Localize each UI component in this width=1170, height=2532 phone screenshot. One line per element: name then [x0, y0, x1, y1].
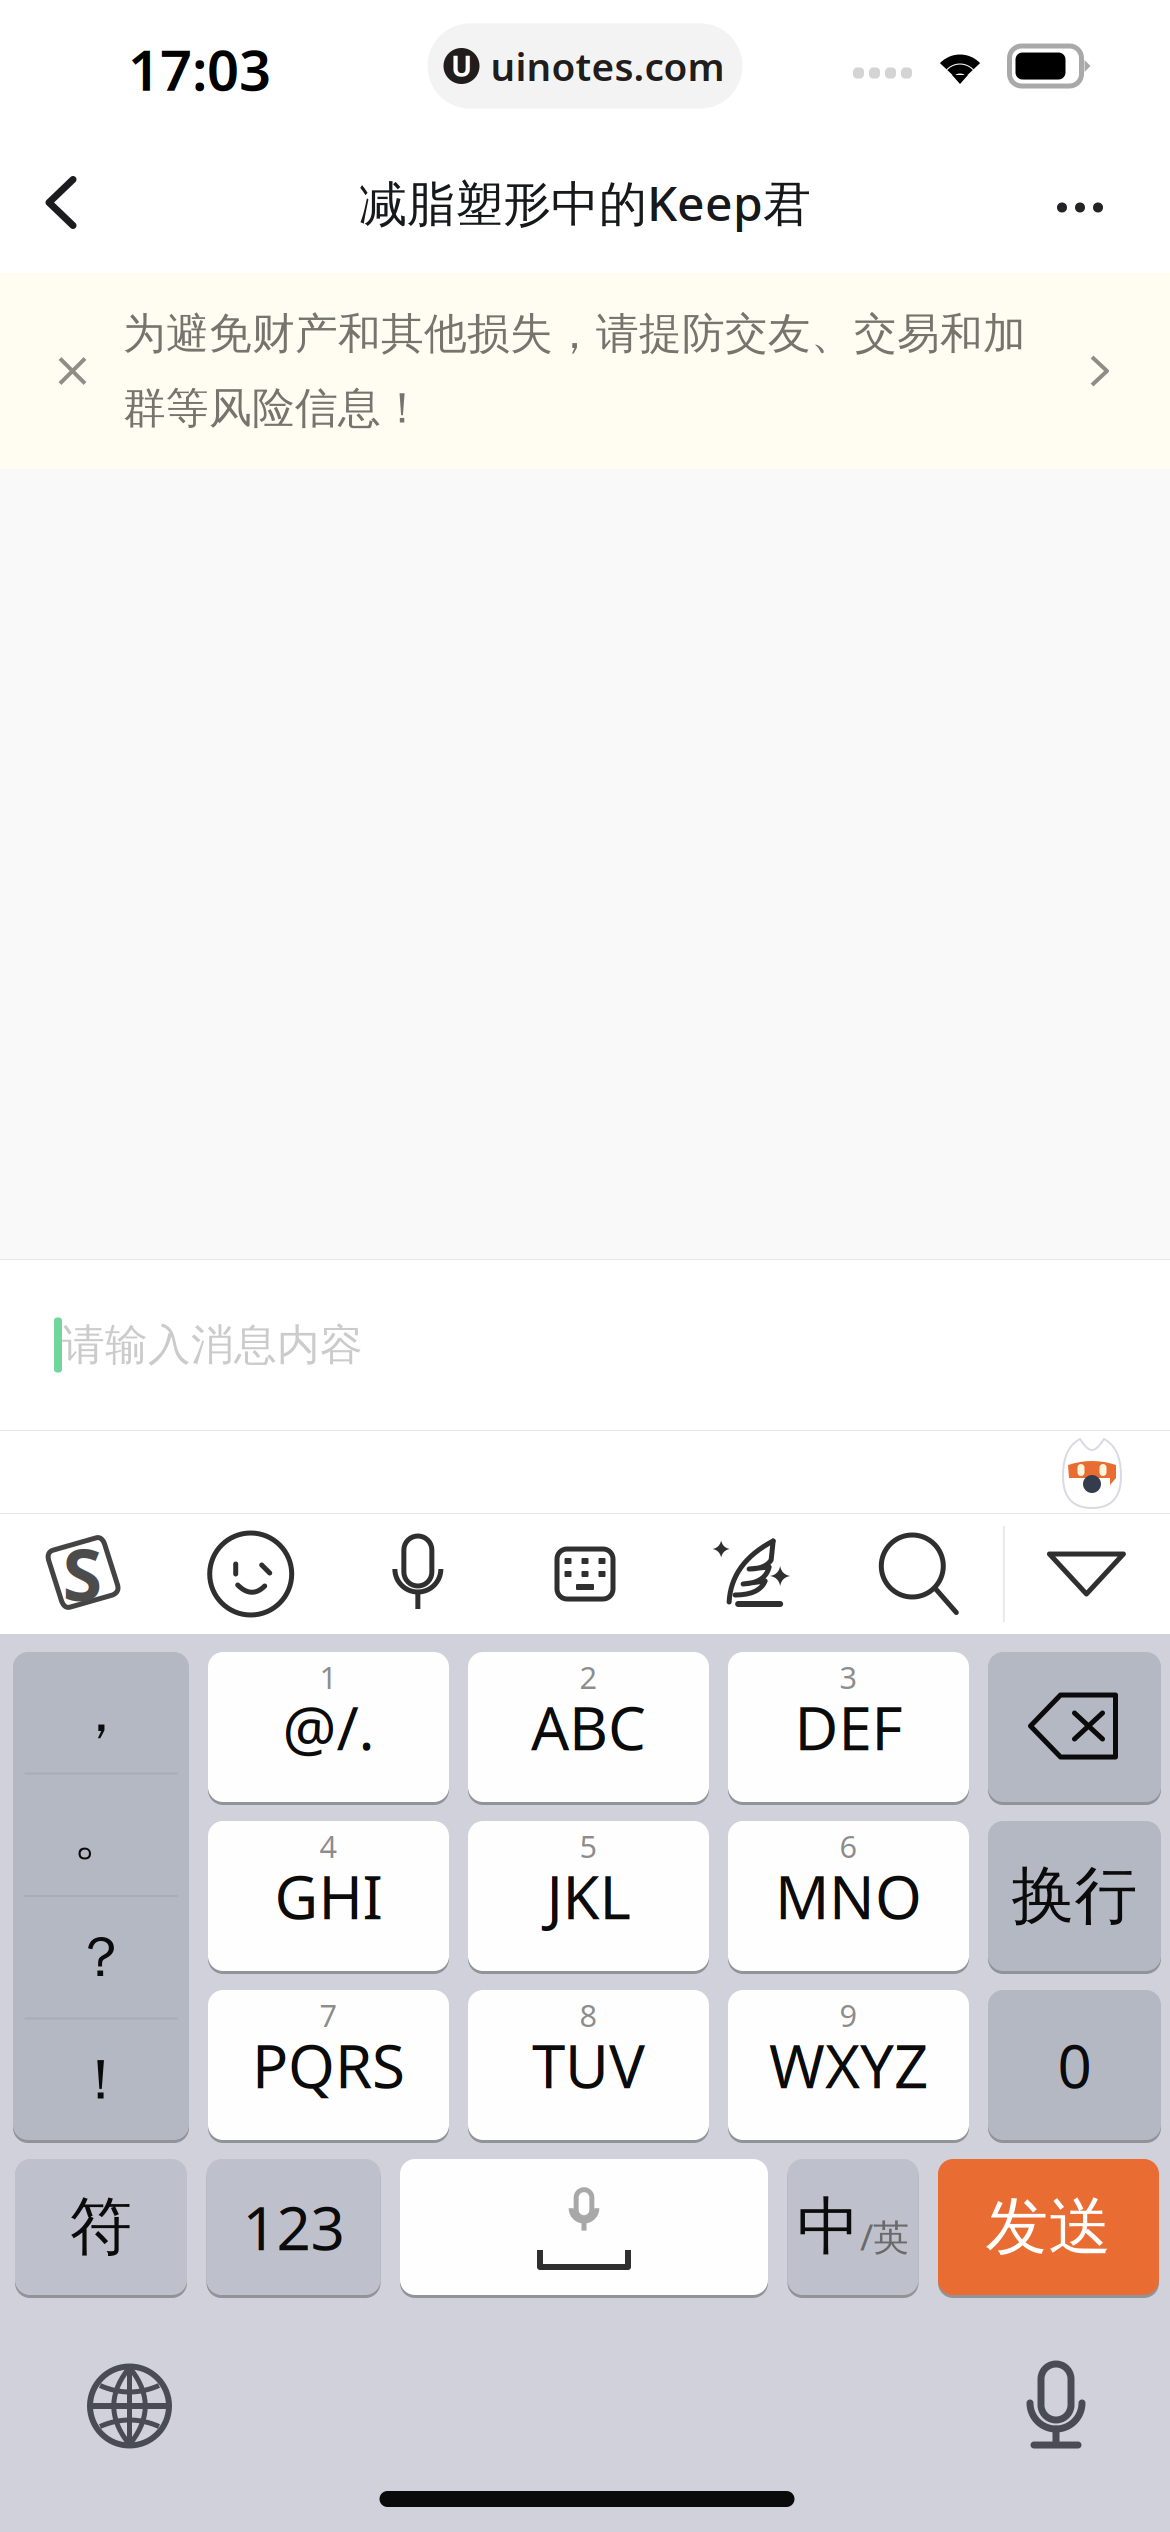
- staticText: /英: [860, 2213, 909, 2260]
- button[interactable]: 发送: [938, 2159, 1159, 2295]
- staticText: 9: [839, 1995, 857, 2035]
- staticText: uinotes.com: [490, 40, 724, 92]
- staticText: WXYZ: [769, 2025, 928, 2105]
- staticText: 8: [579, 1995, 597, 2035]
- staticText: S: [63, 1525, 103, 1621]
- button[interactable]: 请输入消息内容: [0, 1260, 1170, 1430]
- button[interactable]: Dictation: [978, 2343, 1159, 2469]
- staticText: 换行: [1011, 1857, 1137, 1934]
- staticText: 17:03: [128, 32, 271, 106]
- button[interactable]: 换行: [988, 1821, 1161, 1971]
- button[interactable]: 1: [208, 1652, 449, 1802]
- button[interactable]: Voice input: [334, 1514, 501, 1634]
- staticText: 中: [797, 2188, 860, 2265]
- button[interactable]: 7: [208, 1990, 449, 2140]
- staticText: @/.: [282, 1687, 374, 1767]
- staticText: 1: [319, 1657, 337, 1697]
- button[interactable]: 8: [468, 1990, 709, 2140]
- staticText: 2: [579, 1657, 597, 1697]
- staticText: TUV: [532, 2025, 645, 2105]
- staticText: 3: [839, 1657, 857, 1697]
- button[interactable]: 6: [728, 1821, 969, 1971]
- button[interactable]: Hide keyboard: [1003, 1514, 1170, 1634]
- button[interactable]: 123: [206, 2159, 380, 2295]
- button[interactable]: 符: [15, 2159, 187, 2295]
- button[interactable]: 9: [728, 1990, 969, 2140]
- button[interactable]: Search: [836, 1514, 1003, 1634]
- staticText: 5: [579, 1826, 597, 1866]
- staticText: MNO: [775, 1856, 922, 1936]
- staticText: U: [451, 47, 472, 85]
- staticText: ？: [73, 1923, 129, 1992]
- button[interactable]: 5: [468, 1821, 709, 1971]
- staticText: 符: [69, 2188, 132, 2265]
- button[interactable]: Switch keyboard: [15, 2350, 219, 2461]
- button[interactable]: AI assistant: [1054, 1431, 1170, 1513]
- staticText: ！: [73, 2045, 129, 2114]
- staticText: ，: [73, 1678, 129, 1747]
- button[interactable]: 3: [728, 1652, 969, 1802]
- button[interactable]: Emoji: [167, 1514, 334, 1634]
- staticText: 4: [319, 1826, 337, 1866]
- button[interactable]: Handwriting: [669, 1514, 836, 1634]
- staticText: 123: [242, 2187, 344, 2267]
- button[interactable]: Space: [400, 2159, 768, 2295]
- staticText: PQRS: [252, 2025, 405, 2105]
- button[interactable]: Keyboard layout: [501, 1514, 668, 1634]
- button[interactable]: 为避免财产和其他损失，请提防交友、交易和加群等风险信息！: [0, 273, 1170, 469]
- button[interactable]: Punctuation: [13, 1652, 189, 2140]
- staticText: JKL: [546, 1856, 630, 1936]
- staticText: 发送: [985, 2188, 1111, 2265]
- button[interactable]: 4: [208, 1821, 449, 1971]
- staticText: ABC: [531, 1687, 646, 1767]
- staticText: 6: [839, 1826, 857, 1866]
- button[interactable]: Switch Chinese English: [787, 2159, 918, 2295]
- button[interactable]: 2: [468, 1652, 709, 1802]
- staticText: 减脂塑形中的Keep君: [359, 171, 811, 234]
- button[interactable]: 0: [988, 1990, 1161, 2140]
- button[interactable]: Sogou input: [0, 1514, 167, 1634]
- button[interactable]: Back: [0, 131, 122, 273]
- staticText: 请输入消息内容: [62, 1319, 363, 1371]
- staticText: 0: [1057, 2025, 1091, 2105]
- staticText: GHI: [274, 1856, 382, 1936]
- staticText: 。: [73, 1800, 129, 1869]
- button[interactable]: Delete: [988, 1652, 1161, 1802]
- staticText: 7: [319, 1995, 337, 2035]
- staticText: DEF: [794, 1687, 902, 1767]
- staticText: 为避免财产和其他损失，请提防交友、交易和加群等风险信息！: [123, 308, 1026, 434]
- button[interactable]: More: [1003, 131, 1170, 273]
